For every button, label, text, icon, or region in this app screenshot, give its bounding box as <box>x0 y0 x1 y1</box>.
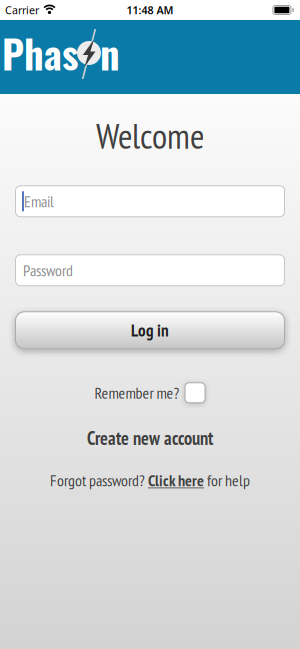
staticText: Email <box>24 191 54 212</box>
staticText: for help <box>204 470 250 491</box>
button[interactable]: Email <box>15 185 285 217</box>
staticText: Create new account <box>87 426 213 450</box>
staticText: Phas <box>2 24 78 82</box>
staticText: Remember me? <box>94 382 179 403</box>
staticText: Forgot password? <box>50 470 148 491</box>
staticText: Log in <box>131 319 169 341</box>
staticText: Carrier <box>5 3 39 17</box>
button[interactable]: Log in <box>15 311 285 349</box>
staticText: 11:48 AM <box>126 3 173 17</box>
button[interactable]: Password <box>15 254 285 286</box>
staticText: Password <box>23 260 73 281</box>
staticText: Welcome <box>96 113 204 158</box>
button[interactable]: Create new account <box>87 426 213 450</box>
button[interactable]: Remember me <box>184 382 205 403</box>
staticText: Click here <box>148 470 204 491</box>
staticText: n <box>100 24 120 82</box>
button[interactable]: Click here <box>148 470 204 491</box>
